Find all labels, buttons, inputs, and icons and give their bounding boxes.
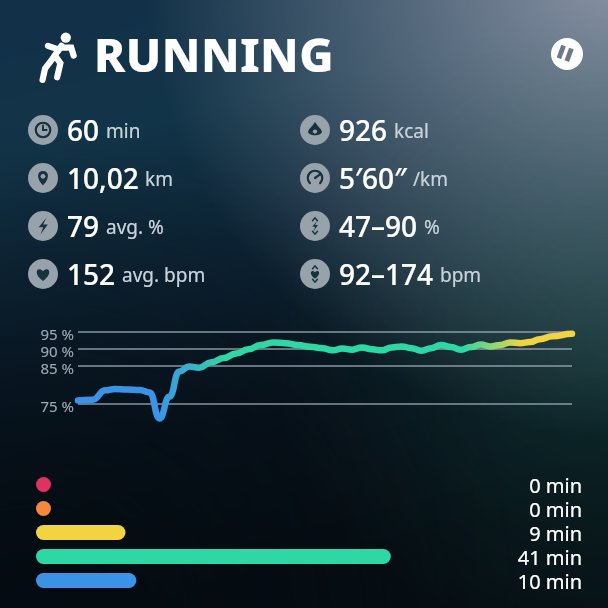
- button[interactable]: 47–90: [300, 204, 440, 248]
- button[interactable]: 0 min: [36, 496, 582, 520]
- button[interactable]: 60: [28, 108, 141, 152]
- staticText: 0 min: [498, 496, 582, 520]
- staticText: 10,02: [67, 159, 139, 197]
- staticText: /km: [413, 166, 448, 192]
- staticText: 5′60″: [339, 159, 407, 197]
- staticText: 47–90: [339, 207, 418, 245]
- staticText: 95 %: [26, 324, 74, 344]
- button[interactable]: 0 min: [36, 472, 582, 496]
- button[interactable]: 5′60″: [300, 156, 448, 200]
- staticText: 92–174: [339, 255, 434, 293]
- staticText: 41 min: [498, 544, 582, 568]
- staticText: 926: [339, 111, 388, 149]
- staticText: %: [424, 214, 440, 240]
- staticText: avg. %: [106, 214, 164, 240]
- button[interactable]: 10 min: [36, 568, 582, 592]
- staticText: 10 min: [498, 568, 582, 592]
- staticText: 60: [67, 111, 100, 149]
- button[interactable]: 9 min: [36, 520, 582, 544]
- button[interactable]: 79: [28, 204, 164, 248]
- staticText: 85 %: [26, 358, 74, 378]
- button[interactable]: 152: [28, 252, 206, 296]
- staticText: km: [145, 166, 173, 192]
- staticText: 152: [67, 255, 116, 293]
- staticText: bpm: [440, 262, 482, 288]
- button[interactable]: 41 min: [36, 544, 582, 568]
- staticText: 0 min: [498, 472, 582, 496]
- staticText: min: [106, 118, 141, 144]
- staticText: 90 %: [26, 341, 74, 361]
- button[interactable]: App logo: [551, 38, 583, 70]
- staticText: RUNNING: [94, 22, 335, 86]
- staticText: 79: [67, 207, 100, 245]
- button[interactable]: 10,02: [28, 156, 173, 200]
- button[interactable]: 92–174: [300, 252, 482, 296]
- button[interactable]: 926: [300, 108, 429, 152]
- staticText: 9 min: [498, 520, 582, 544]
- staticText: kcal: [394, 118, 429, 144]
- staticText: avg. bpm: [122, 262, 206, 288]
- staticText: 75 %: [26, 396, 74, 416]
